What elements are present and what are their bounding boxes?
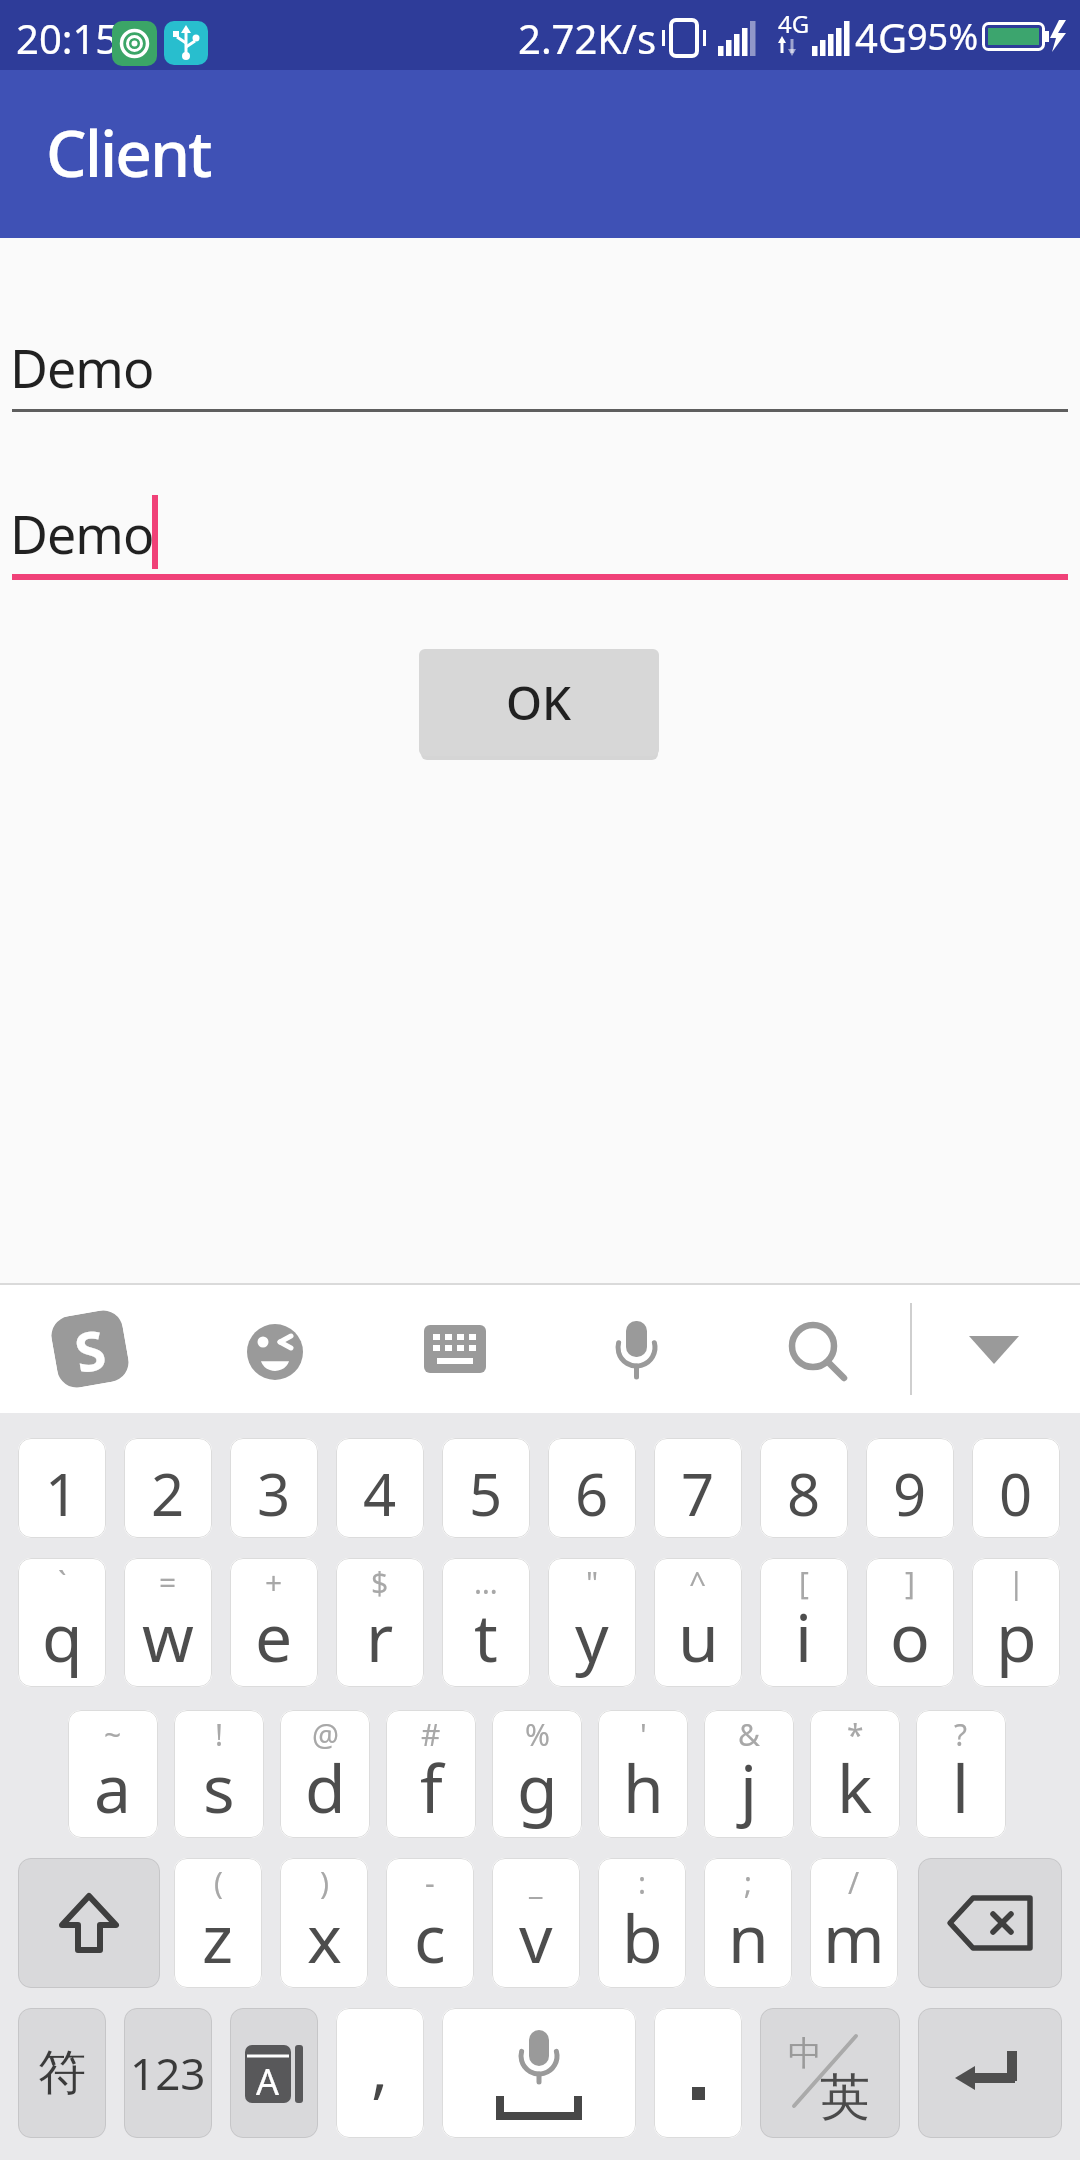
button[interactable]: &	[704, 1710, 794, 1838]
staticText: 符	[38, 2043, 86, 2103]
button[interactable]: '	[598, 1710, 688, 1838]
staticText: 5	[469, 1454, 503, 1533]
button[interactable]: 4	[336, 1438, 424, 1538]
button[interactable]: 中	[760, 2008, 900, 2138]
button[interactable]: ]	[866, 1558, 954, 1687]
staticText: `	[58, 1562, 67, 1603]
button[interactable]: #	[386, 1710, 476, 1838]
button[interactable]: 9	[866, 1438, 954, 1538]
staticText: 8	[787, 1454, 821, 1533]
button[interactable]: S	[48, 1307, 132, 1391]
staticText: 7	[681, 1454, 715, 1533]
button[interactable]	[246, 1323, 304, 1381]
button[interactable]: $	[336, 1558, 424, 1687]
button[interactable]: 5	[442, 1438, 530, 1538]
staticText: p	[996, 1591, 1037, 1681]
staticText: d	[305, 1742, 346, 1832]
staticText: 95%	[907, 12, 979, 61]
button[interactable]: _	[492, 1858, 580, 1988]
button[interactable]: Demo	[12, 300, 1068, 412]
button[interactable]	[18, 1858, 160, 1988]
button[interactable]: 123	[124, 2008, 212, 2138]
button[interactable]	[918, 1858, 1062, 1988]
button[interactable]: 符	[18, 2008, 106, 2138]
button[interactable]: `	[18, 1558, 106, 1687]
button[interactable]: ^	[654, 1558, 742, 1687]
button[interactable]: 0	[972, 1438, 1060, 1538]
staticText: Demo	[10, 498, 154, 569]
staticText: 4	[363, 1454, 397, 1533]
button[interactable]: "	[548, 1558, 636, 1687]
staticText: [	[799, 1562, 809, 1603]
staticText: 2	[151, 1454, 185, 1533]
button[interactable]: ~	[68, 1710, 158, 1838]
staticText: A	[256, 2057, 280, 2106]
button[interactable]: /	[810, 1858, 898, 1988]
staticText: =	[159, 1562, 177, 1603]
button[interactable]: [	[760, 1558, 848, 1687]
button[interactable]: 8	[760, 1438, 848, 1538]
button[interactable]	[788, 1323, 848, 1383]
staticText: v	[519, 1892, 553, 1982]
button[interactable]	[424, 1325, 486, 1373]
button[interactable]: (	[174, 1858, 262, 1988]
staticText: k	[837, 1742, 873, 1832]
button[interactable]: 1	[18, 1438, 106, 1538]
staticText: 4G	[855, 10, 907, 64]
button[interactable]: 3	[230, 1438, 318, 1538]
button[interactable]: @	[280, 1710, 370, 1838]
staticText: ]	[905, 1562, 915, 1603]
staticText: 9	[893, 1454, 927, 1533]
staticText: c	[414, 1892, 446, 1982]
staticText: r	[366, 1591, 394, 1681]
staticText: ?	[954, 1714, 968, 1755]
button[interactable]: …	[442, 1558, 530, 1687]
staticText: b	[622, 1892, 663, 1982]
button[interactable]: 7	[654, 1438, 742, 1538]
button[interactable]: 2	[124, 1438, 212, 1538]
staticText: %	[525, 1714, 550, 1755]
staticText: -	[425, 1862, 435, 1903]
staticText: y	[575, 1591, 609, 1681]
staticText: 20:15	[16, 11, 119, 65]
button[interactable]	[966, 1333, 1022, 1367]
staticText: o	[890, 1591, 930, 1681]
button[interactable]: ,	[336, 2008, 424, 2138]
button[interactable]	[442, 2008, 636, 2138]
staticText: j	[740, 1742, 758, 1832]
button[interactable]: :	[598, 1858, 686, 1988]
staticText: +	[265, 1562, 283, 1603]
staticText: /	[848, 1862, 860, 1903]
button[interactable]	[918, 2008, 1062, 2138]
staticText: x	[307, 1892, 342, 1982]
button[interactable]: +	[230, 1558, 318, 1687]
button[interactable]: %	[492, 1710, 582, 1838]
button[interactable]: )	[280, 1858, 368, 1988]
staticText: m	[823, 1892, 885, 1982]
button[interactable]: OK	[419, 649, 659, 756]
button[interactable]: A	[230, 2008, 318, 2138]
staticText: 123	[130, 2043, 206, 2103]
staticText: i	[795, 1591, 813, 1681]
staticText: OK	[506, 671, 572, 734]
staticText: a	[94, 1742, 132, 1832]
staticText: 3	[257, 1454, 291, 1533]
button[interactable]: ;	[704, 1858, 792, 1988]
button[interactable]: ?	[916, 1710, 1006, 1838]
button[interactable]: =	[124, 1558, 212, 1687]
button[interactable]	[612, 1321, 660, 1381]
staticText: '	[640, 1714, 647, 1755]
staticText: s	[203, 1742, 235, 1832]
button[interactable]: !	[174, 1710, 264, 1838]
staticText: Demo	[10, 332, 154, 403]
button[interactable]: Demo	[12, 468, 1068, 580]
button[interactable]: -	[386, 1858, 474, 1988]
staticText: "	[586, 1562, 599, 1603]
staticText: @	[312, 1714, 339, 1755]
staticText: q	[42, 1591, 83, 1681]
button[interactable]: |	[972, 1558, 1060, 1687]
staticText: 0	[999, 1454, 1033, 1533]
button[interactable]: *	[810, 1710, 900, 1838]
button[interactable]: 6	[548, 1438, 636, 1538]
button[interactable]	[654, 2008, 742, 2138]
